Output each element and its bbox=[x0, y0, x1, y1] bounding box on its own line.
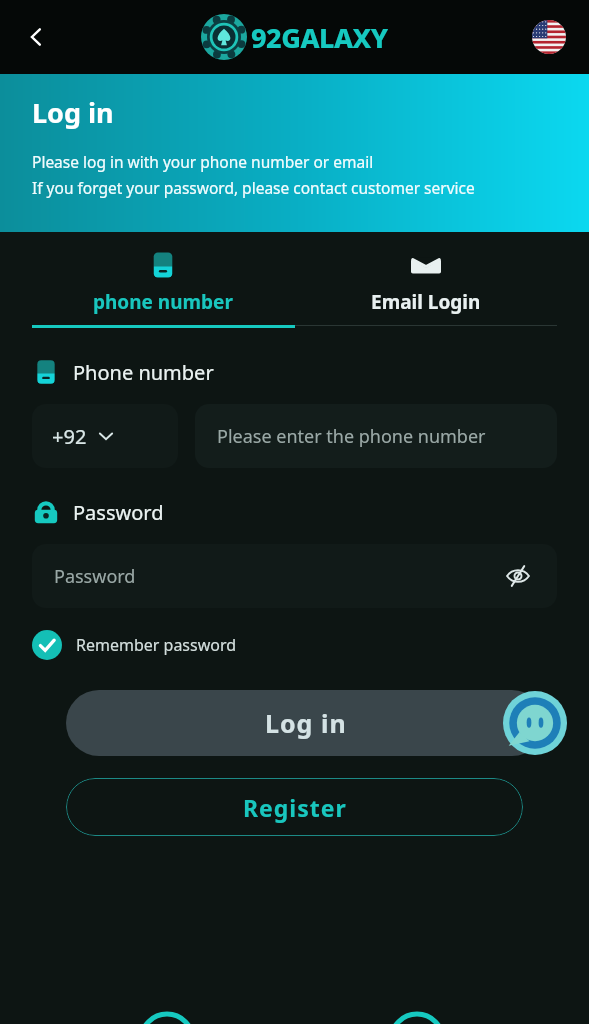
button[interactable]: Email Login bbox=[294, 250, 557, 315]
button[interactable]: Log in bbox=[66, 690, 545, 756]
staticText: Please enter the phone number bbox=[217, 424, 486, 449]
button[interactable]: Remember password bbox=[32, 630, 237, 660]
button[interactable]: Password bbox=[32, 544, 557, 608]
button[interactable]: Register bbox=[66, 778, 523, 836]
button[interactable]: Back bbox=[14, 15, 58, 59]
button[interactable]: Customer support bbox=[497, 690, 573, 756]
button[interactable]: phone number bbox=[32, 250, 294, 315]
button[interactable]: Show password bbox=[501, 559, 535, 593]
staticText: Password bbox=[54, 564, 136, 589]
button[interactable]: Language bbox=[529, 17, 569, 57]
staticText: Log in bbox=[265, 706, 347, 740]
staticText: Remember password bbox=[76, 634, 237, 656]
staticText: Please log in with your phone number or … bbox=[32, 151, 374, 172]
button[interactable]: Please enter the phone number bbox=[195, 404, 557, 468]
staticText: 92GALAXY bbox=[251, 19, 388, 56]
staticText: Log in bbox=[32, 94, 114, 131]
button[interactable]: +92 bbox=[32, 404, 178, 468]
staticText: +92 bbox=[52, 423, 87, 450]
staticText: Password bbox=[73, 499, 164, 526]
staticText: Register bbox=[243, 792, 347, 823]
staticText: Phone number bbox=[73, 359, 214, 386]
staticText: phone number bbox=[93, 289, 233, 315]
staticText: Email Login bbox=[371, 289, 481, 315]
staticText: If you forget your password, please cont… bbox=[32, 177, 475, 198]
